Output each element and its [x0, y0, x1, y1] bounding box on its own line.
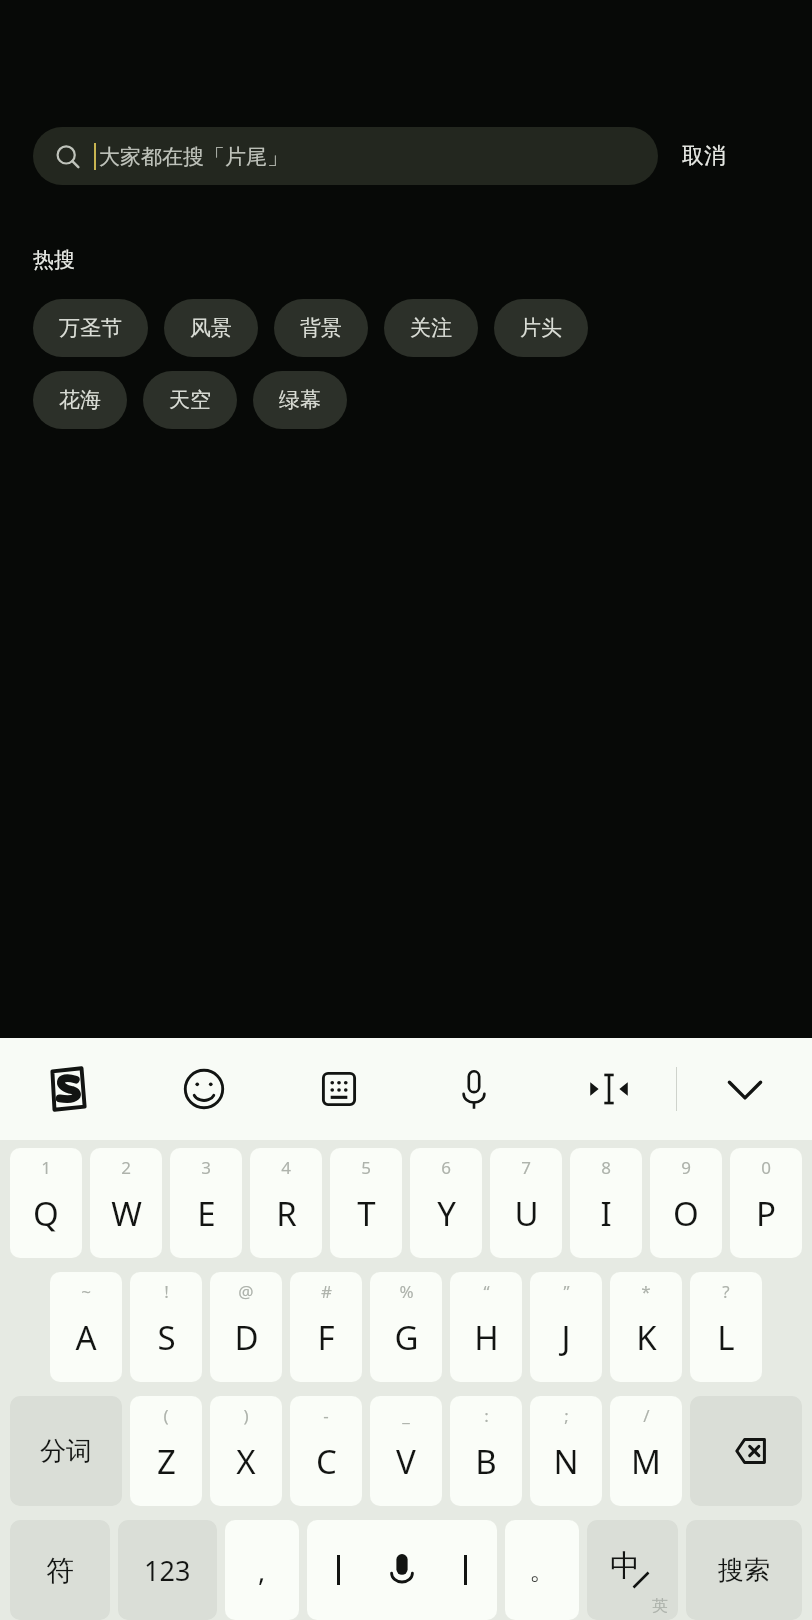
button[interactable]: 天空 [143, 371, 237, 429]
staticText: 0 [761, 1156, 771, 1179]
button[interactable]: “ [450, 1272, 522, 1382]
button[interactable]: 大家都在搜「片尾」 [33, 127, 658, 185]
button[interactable]: 片头 [494, 299, 588, 357]
button[interactable]: 分词 [10, 1396, 122, 1506]
button[interactable]: 花海 [33, 371, 127, 429]
button[interactable]: ( [130, 1396, 202, 1506]
staticText: R [276, 1191, 297, 1236]
button[interactable]: 绿幕 [253, 371, 347, 429]
button[interactable]: * [610, 1272, 682, 1382]
staticText: 风景 [190, 315, 232, 341]
staticText: N [553, 1439, 579, 1484]
button[interactable]: # [290, 1272, 362, 1382]
button[interactable]: 1 [10, 1148, 82, 1258]
button[interactable]: _ [370, 1396, 442, 1506]
staticText: M [631, 1439, 661, 1484]
staticText: T [357, 1191, 376, 1236]
staticText: ? [722, 1280, 730, 1303]
button[interactable]: Move cursor [541, 1038, 676, 1140]
button[interactable]: 0 [730, 1148, 802, 1258]
staticText: 123 [144, 1552, 191, 1589]
button[interactable]: 符 [10, 1520, 110, 1620]
staticText: 天空 [169, 387, 211, 413]
button[interactable]: % [370, 1272, 442, 1382]
staticText: K [636, 1315, 657, 1360]
staticText: 5 [361, 1156, 371, 1179]
staticText: L [717, 1315, 735, 1360]
button[interactable]: 风景 [164, 299, 258, 357]
staticText: S [157, 1315, 176, 1360]
staticText: - [323, 1404, 329, 1427]
button[interactable]: ! [130, 1272, 202, 1382]
button[interactable]: ~ [50, 1272, 122, 1382]
button[interactable]: 6 [410, 1148, 482, 1258]
staticText: V [396, 1439, 416, 1484]
staticText: % [399, 1280, 414, 1303]
staticText: 符 [46, 1553, 74, 1588]
button[interactable]: 3 [170, 1148, 242, 1258]
button[interactable]: ? [690, 1272, 762, 1382]
staticText: # [321, 1280, 332, 1303]
staticText: U [514, 1191, 539, 1236]
staticText: 9 [681, 1156, 691, 1179]
staticText: 1 [41, 1156, 51, 1179]
button[interactable]: 5 [330, 1148, 402, 1258]
staticText: “ [483, 1280, 490, 1303]
button[interactable]: Switch Chinese English [587, 1520, 678, 1620]
button[interactable]: - [290, 1396, 362, 1506]
staticText: 万圣节 [59, 315, 122, 341]
staticText: B [475, 1439, 497, 1484]
staticText: ( [163, 1404, 169, 1427]
staticText: 取消 [682, 142, 726, 170]
staticText: / [643, 1404, 650, 1427]
button[interactable]: Emoji [136, 1038, 271, 1140]
button[interactable]: : [450, 1396, 522, 1506]
button[interactable]: Backspace [690, 1396, 802, 1506]
staticText: 4 [281, 1156, 291, 1179]
staticText: H [474, 1315, 499, 1360]
button[interactable]: 取消 [670, 134, 738, 178]
button[interactable]: Voice input [406, 1038, 541, 1140]
button[interactable]: Sogou input [0, 1038, 136, 1140]
staticText: 关注 [410, 315, 452, 341]
button[interactable]: / [610, 1396, 682, 1506]
button[interactable]: ) [210, 1396, 282, 1506]
staticText: I [600, 1191, 612, 1236]
staticText: ) [243, 1404, 249, 1427]
staticText: 7 [521, 1156, 531, 1179]
staticText: 搜索 [718, 1554, 770, 1587]
staticText: Q [33, 1191, 59, 1236]
button[interactable]: 搜索 [686, 1520, 802, 1620]
button[interactable]: @ [210, 1272, 282, 1382]
button[interactable]: Keyboard layout [271, 1038, 406, 1140]
button[interactable]: 2 [90, 1148, 162, 1258]
button[interactable]: 9 [650, 1148, 722, 1258]
button[interactable]: 7 [490, 1148, 562, 1258]
button[interactable]: 关注 [384, 299, 478, 357]
staticText: P [756, 1191, 776, 1236]
staticText: C [316, 1439, 337, 1484]
staticText: D [234, 1315, 259, 1360]
staticText: ! [164, 1280, 169, 1303]
button[interactable]: Space / Voice [307, 1520, 497, 1620]
button[interactable]: 4 [250, 1148, 322, 1258]
staticText: W [111, 1191, 142, 1236]
staticText: 3 [201, 1156, 211, 1179]
staticText: A [75, 1315, 97, 1360]
staticText: 6 [441, 1156, 451, 1179]
button[interactable]: , [225, 1520, 299, 1620]
button[interactable]: 。 [505, 1520, 579, 1620]
button[interactable]: ” [530, 1272, 602, 1382]
button[interactable]: Hide keyboard [677, 1038, 812, 1140]
button[interactable]: 背景 [274, 299, 368, 357]
staticText: G [394, 1315, 419, 1360]
staticText: ~ [81, 1280, 91, 1303]
button[interactable]: 123 [118, 1520, 217, 1620]
staticText: ” [563, 1280, 570, 1303]
button[interactable]: 万圣节 [33, 299, 148, 357]
staticText: 背景 [300, 315, 342, 341]
button[interactable]: ; [530, 1396, 602, 1506]
staticText: 。 [529, 1553, 556, 1587]
button[interactable]: 8 [570, 1148, 642, 1258]
staticText: 2 [121, 1156, 131, 1179]
